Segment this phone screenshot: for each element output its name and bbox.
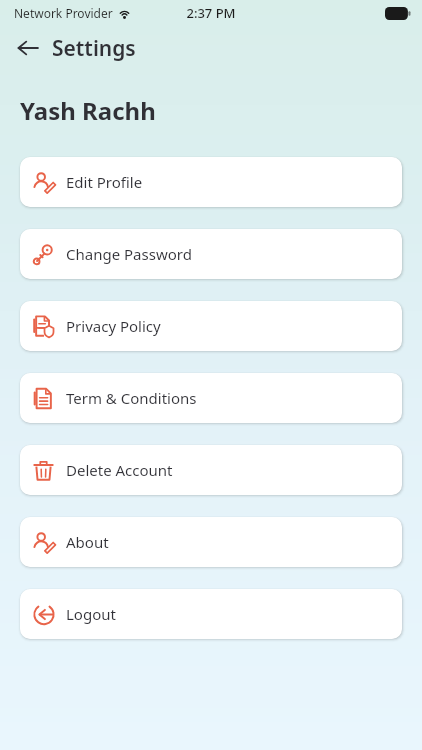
staticText: Settings bbox=[52, 34, 136, 63]
staticText: Delete Account bbox=[66, 460, 173, 480]
button[interactable]: Term & Conditions bbox=[20, 373, 402, 423]
staticText: Network Provider bbox=[14, 5, 113, 21]
staticText: 2:37 PM bbox=[186, 4, 236, 22]
button[interactable]: Delete Account bbox=[20, 445, 402, 495]
staticText: Yash Rachh bbox=[20, 94, 156, 127]
staticText: About bbox=[66, 532, 109, 552]
button[interactable]: Back bbox=[10, 30, 46, 66]
button[interactable]: Privacy Policy bbox=[20, 301, 402, 351]
staticText: Change Password bbox=[66, 244, 192, 264]
staticText: Privacy Policy bbox=[66, 316, 161, 336]
button[interactable]: Logout bbox=[20, 589, 402, 639]
staticText: Edit Profile bbox=[66, 172, 143, 192]
staticText: Logout bbox=[66, 604, 116, 624]
staticText: Term & Conditions bbox=[66, 388, 197, 408]
button[interactable]: Edit Profile bbox=[20, 157, 402, 207]
button[interactable]: Change Password bbox=[20, 229, 402, 279]
button[interactable]: About bbox=[20, 517, 402, 567]
